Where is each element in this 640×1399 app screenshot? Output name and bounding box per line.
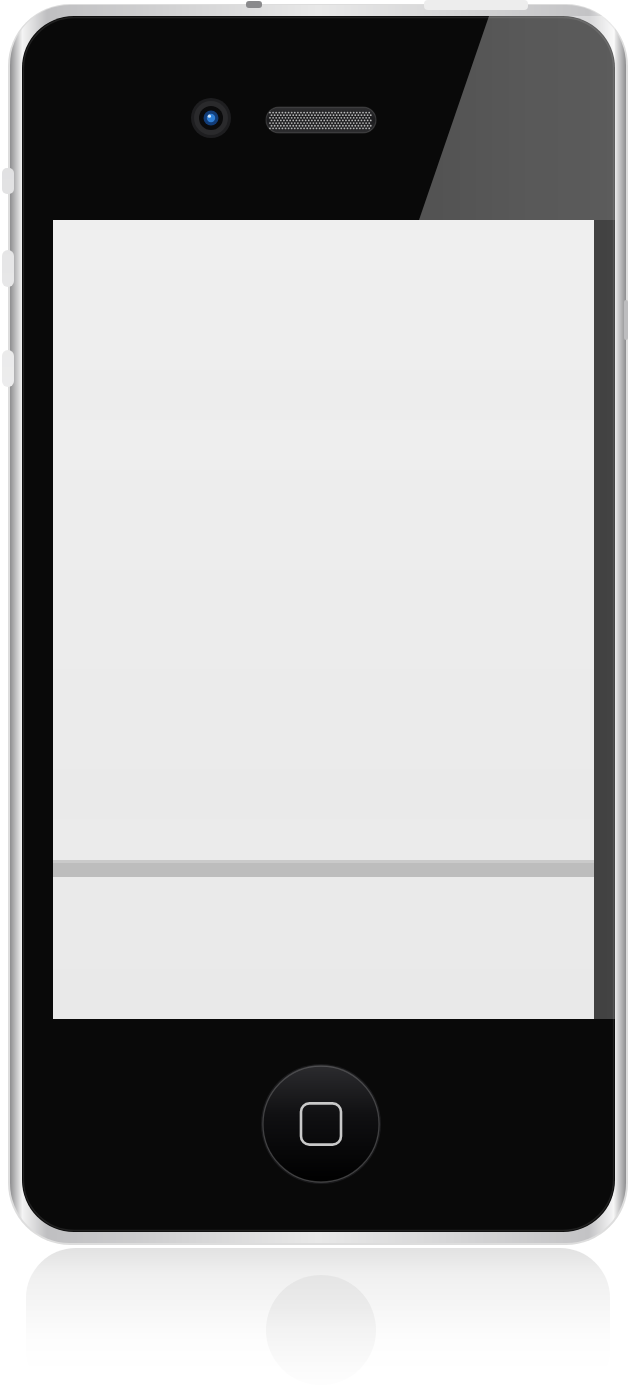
button[interactable]: iPhone device mockup with blank screen: [0, 0, 640, 1399]
other: Home: [0, 0, 640, 1399]
